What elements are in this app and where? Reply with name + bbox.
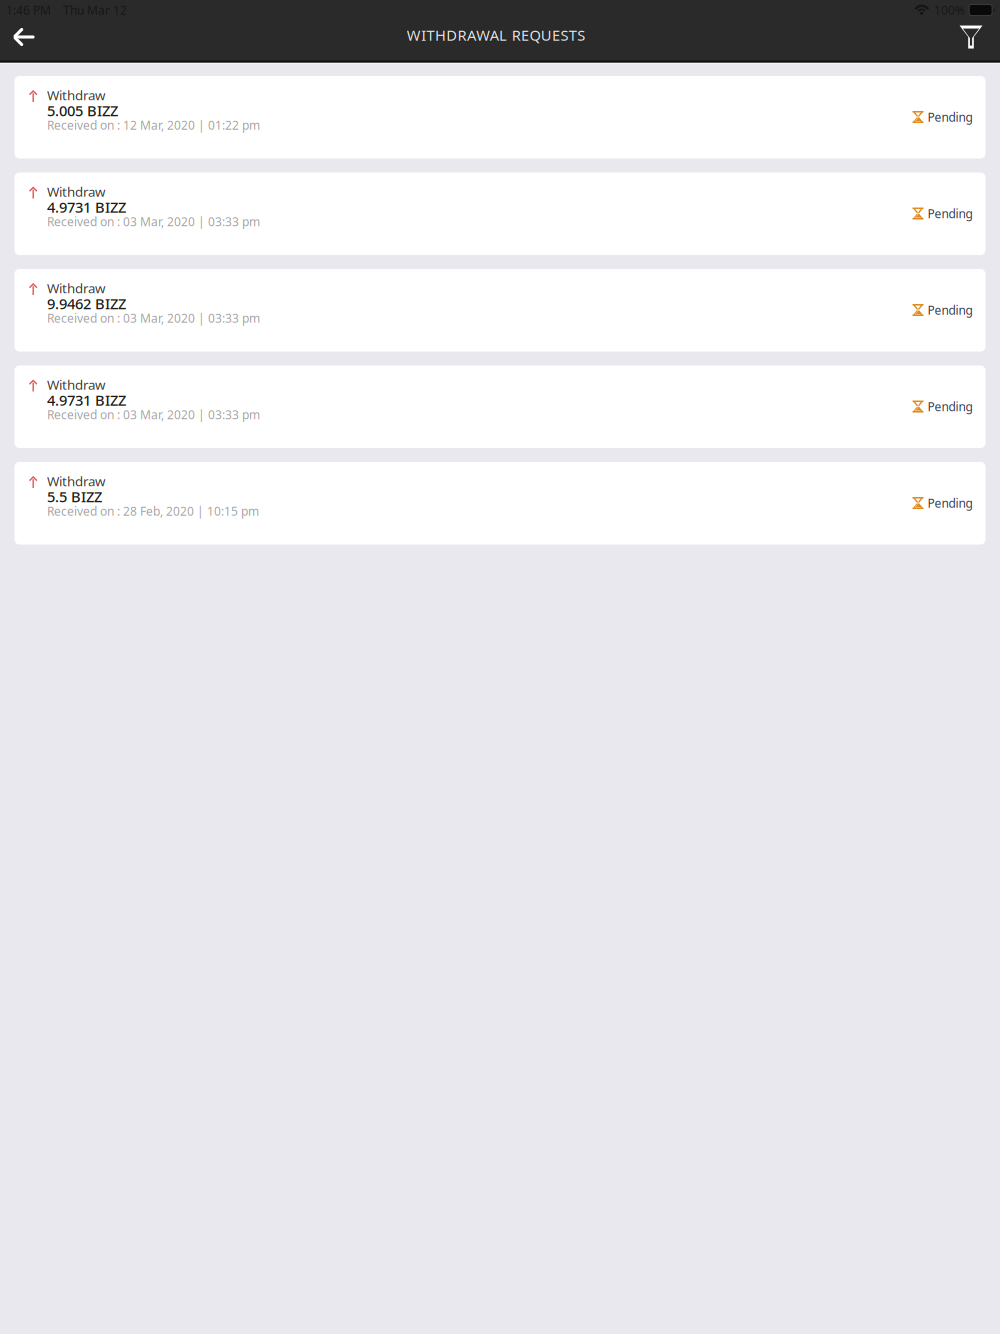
staticText: Received on : 28 Feb, 2020 | 10:15 pm <box>47 503 259 519</box>
button[interactable]: Withdraw <box>14 462 985 544</box>
staticText: 5.005 BIZZ <box>47 101 118 120</box>
staticText: 4.9731 BIZZ <box>47 390 126 410</box>
staticText: Pending <box>927 109 972 125</box>
staticText: Withdraw <box>47 376 105 393</box>
staticText: Withdraw <box>47 472 105 490</box>
staticText: Withdraw <box>47 86 105 104</box>
staticText: Received on : 12 Mar, 2020 | 01:22 pm <box>47 117 260 133</box>
staticText: Received on : 03 Mar, 2020 | 03:33 pm <box>47 213 260 229</box>
staticText: 5.5 BIZZ <box>47 487 102 506</box>
button[interactable]: Back <box>2 23 46 51</box>
staticText: Withdraw <box>47 279 105 297</box>
button[interactable]: Withdraw <box>14 365 985 448</box>
staticText: 1:46 PM <box>6 2 51 18</box>
staticText: Thu Mar 12 <box>63 2 127 18</box>
button[interactable]: Withdraw <box>14 172 985 255</box>
staticText: WITHDRAWAL REQUESTS <box>407 25 585 45</box>
staticText: Received on : 03 Mar, 2020 | 03:33 pm <box>47 406 260 422</box>
button[interactable]: Withdraw <box>14 76 985 158</box>
staticText: Pending <box>927 398 972 414</box>
button[interactable]: Filter <box>949 23 993 51</box>
staticText: Pending <box>927 205 972 221</box>
button[interactable]: Withdraw <box>14 269 985 351</box>
staticText: 4.9731 BIZZ <box>47 197 126 217</box>
staticText: 100% <box>934 2 965 18</box>
staticText: Pending <box>927 302 972 318</box>
staticText: Pending <box>927 495 972 511</box>
staticText: Received on : 03 Mar, 2020 | 03:33 pm <box>47 310 260 326</box>
staticText: Withdraw <box>47 183 105 200</box>
staticText: 9.9462 BIZZ <box>47 294 126 313</box>
